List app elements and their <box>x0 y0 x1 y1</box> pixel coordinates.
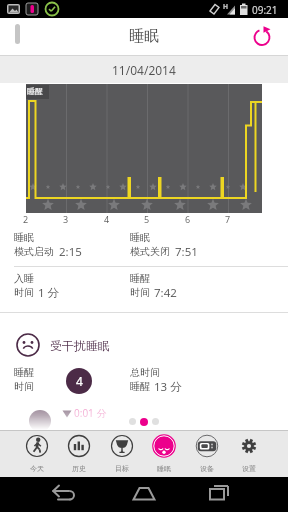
staticText: 睡醒 <box>27 86 43 96</box>
staticText: 总时间 <box>130 366 160 379</box>
staticText: 1 分 <box>38 285 60 301</box>
button[interactable]: 睡眠 <box>143 432 185 477</box>
staticText: 设备 <box>186 464 228 473</box>
staticText: 2 <box>23 213 29 225</box>
staticText: 模式启动 <box>14 245 54 258</box>
staticText: 时间 <box>14 380 34 393</box>
staticText: 7:42 <box>154 285 177 301</box>
staticText: 睡醒 <box>130 380 150 393</box>
staticText: 6 <box>185 213 191 225</box>
staticText: 睡醒 <box>14 366 34 379</box>
staticText: 历史 <box>58 464 100 473</box>
button[interactable] <box>207 483 237 507</box>
staticText: 2:15 <box>59 244 82 260</box>
staticText: 0:01 分 <box>74 406 107 420</box>
staticText: 5 <box>144 213 150 225</box>
staticText: 睡眠 <box>14 231 34 244</box>
button[interactable]: 4 <box>66 368 92 394</box>
staticText: 时间 <box>130 286 150 299</box>
button[interactable]: 设置 <box>228 432 270 477</box>
staticText: 睡眠 <box>129 27 159 46</box>
staticText: 7:51 <box>175 244 198 260</box>
staticText: 4 <box>76 373 83 389</box>
button[interactable] <box>46 483 76 507</box>
staticText: 7 <box>225 213 231 225</box>
staticText: 模式关闭 <box>130 245 170 258</box>
staticText: 3 <box>63 213 69 225</box>
staticText: 目标 <box>101 464 143 473</box>
staticText: 设置 <box>228 464 270 473</box>
staticText: 11/04/2014 <box>112 62 176 78</box>
button[interactable]: 目标 <box>101 432 143 477</box>
button[interactable]: 今天 <box>16 432 58 477</box>
staticText: 睡眠 <box>143 464 185 473</box>
staticText: 4 <box>104 213 110 225</box>
staticText: 睡眠 <box>130 231 150 244</box>
staticText: 时间 <box>14 286 34 299</box>
staticText: 睡醒 <box>130 272 150 285</box>
staticText: 13 分 <box>154 379 182 395</box>
button[interactable]: 设备 <box>186 432 228 477</box>
button[interactable]: 历史 <box>58 432 100 477</box>
staticText: 09:21 <box>252 3 278 17</box>
staticText: 入睡 <box>14 272 34 285</box>
button[interactable] <box>248 23 276 51</box>
staticText: 今天 <box>16 464 58 473</box>
button[interactable] <box>129 483 159 507</box>
staticText: 受干扰睡眠 <box>50 338 110 353</box>
